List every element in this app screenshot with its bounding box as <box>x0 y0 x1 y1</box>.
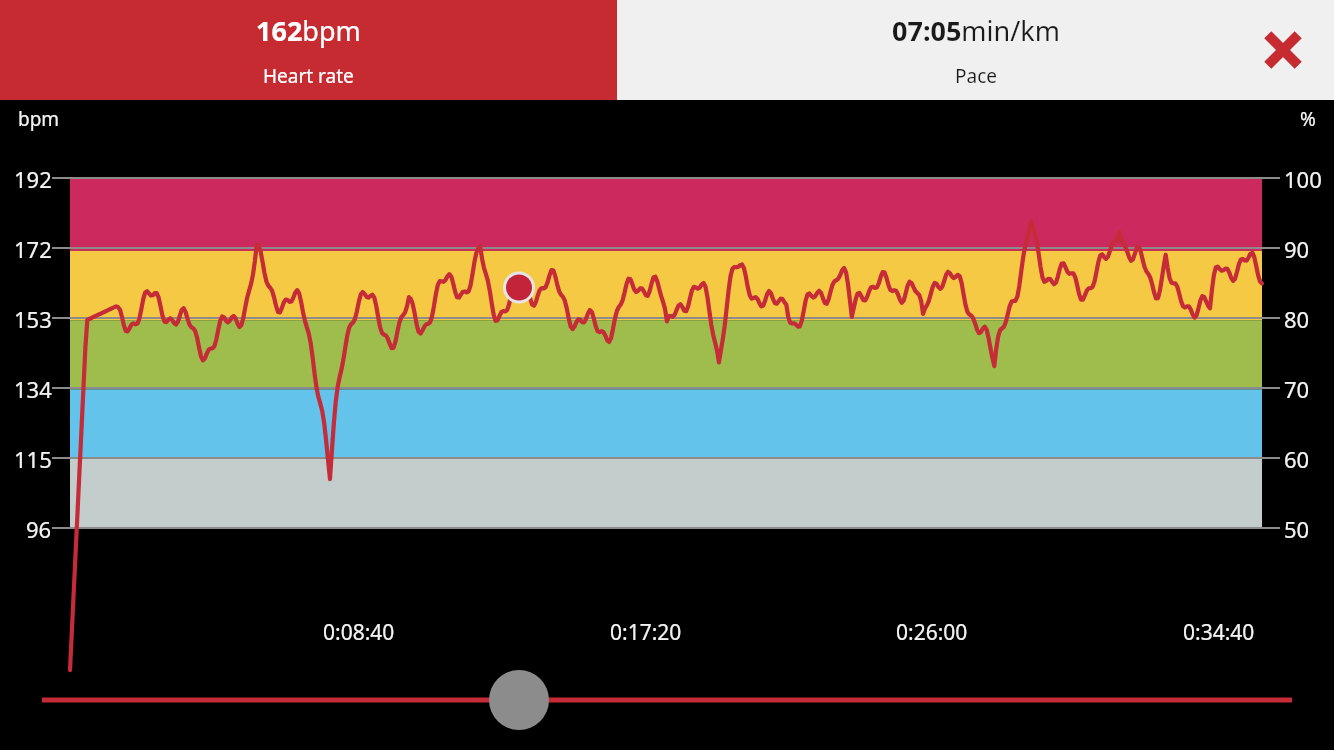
staticText: 0:34:40 <box>1183 618 1255 647</box>
staticText: 80 <box>1284 304 1310 334</box>
button[interactable]: Scrub timeline <box>489 670 549 730</box>
staticText: 0:17:20 <box>610 618 682 647</box>
staticText: % <box>1300 106 1316 132</box>
staticText: 192 <box>14 164 52 194</box>
staticText: 70 <box>1284 374 1310 404</box>
staticText: 60 <box>1284 444 1310 474</box>
staticText: Pace <box>955 63 997 89</box>
staticText: bpm <box>18 106 60 132</box>
staticText: 90 <box>1284 234 1310 264</box>
staticText: Heart rate <box>263 63 354 89</box>
staticText: 07:05min/km <box>892 12 1060 49</box>
staticText: 162bpm <box>256 12 361 49</box>
button[interactable]: 07:05min/km <box>617 0 1334 100</box>
staticText: 50 <box>1284 514 1310 544</box>
staticText: 115 <box>14 444 52 474</box>
staticText: 0:08:40 <box>323 618 395 647</box>
staticText: 96 <box>26 514 52 544</box>
staticText: 153 <box>14 304 52 334</box>
staticText: 0:26:00 <box>896 618 968 647</box>
staticText: 100 <box>1284 164 1322 194</box>
button[interactable]: 162bpm <box>0 0 617 100</box>
staticText: 172 <box>14 234 52 264</box>
button[interactable]: Close <box>1256 23 1310 77</box>
staticText: 134 <box>14 374 52 404</box>
